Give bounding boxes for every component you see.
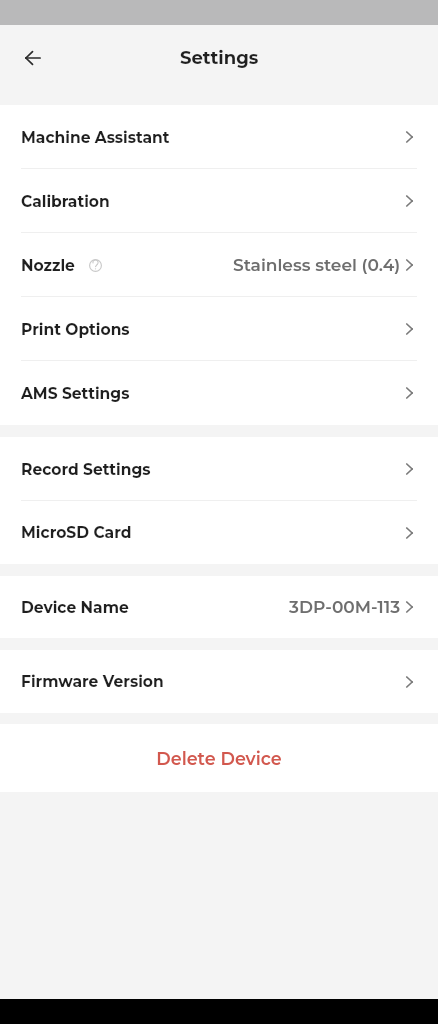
- staticText: Stainless steel (0.4): [233, 255, 401, 276]
- staticText: Record Settings: [21, 460, 151, 479]
- button[interactable]: Delete Device: [0, 724, 438, 792]
- button[interactable]: Firmware Version: [0, 650, 438, 713]
- button[interactable]: Calibration: [0, 169, 438, 233]
- button[interactable]: Nozzle: [0, 233, 438, 297]
- button[interactable]: Print Options: [0, 297, 438, 361]
- button[interactable]: Device Name: [0, 576, 438, 638]
- staticText: Firmware Version: [21, 672, 164, 691]
- staticText: AMS Settings: [21, 384, 130, 403]
- staticText: Device Name: [21, 598, 129, 617]
- button[interactable]: Record Settings: [0, 437, 438, 501]
- staticText: 3DP-00M-113: [289, 597, 401, 618]
- staticText: Settings: [180, 47, 259, 69]
- button[interactable]: Back: [15, 40, 51, 76]
- staticText: MicroSD Card: [21, 523, 132, 542]
- staticText: Print Options: [21, 320, 130, 339]
- staticText: Delete Device: [156, 748, 282, 769]
- button[interactable]: MicroSD Card: [0, 501, 438, 564]
- staticText: Nozzle: [21, 256, 75, 275]
- button[interactable]: AMS Settings: [0, 361, 438, 425]
- staticText: Machine Assistant: [21, 128, 170, 147]
- button[interactable]: Machine Assistant: [0, 105, 438, 169]
- staticText: Calibration: [21, 192, 110, 211]
